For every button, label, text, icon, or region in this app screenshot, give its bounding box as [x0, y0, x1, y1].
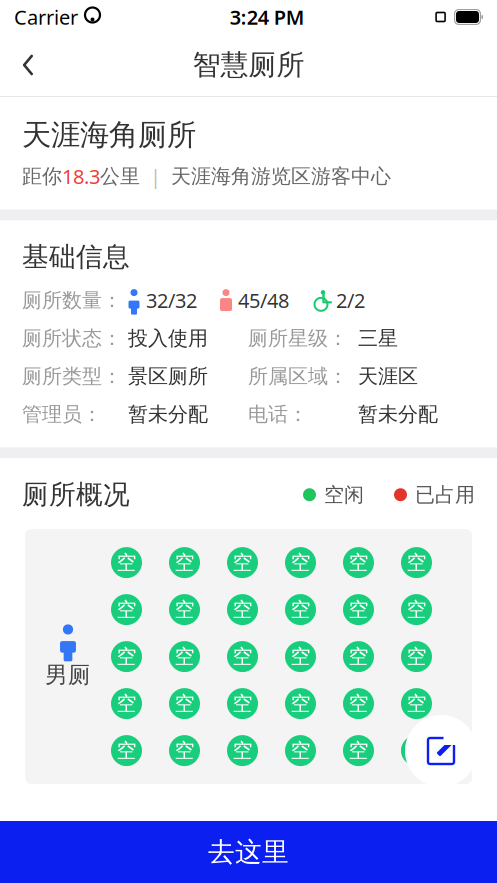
- staticText: |: [140, 163, 171, 190]
- staticText: 天涯海角游览区游客中心: [171, 164, 391, 189]
- staticText: 空: [348, 644, 368, 669]
- staticText: 空闲: [324, 482, 364, 507]
- staticText: 空: [406, 738, 426, 763]
- staticText: 空: [116, 597, 136, 622]
- staticText: 已占用: [415, 482, 475, 507]
- staticText: 空: [232, 597, 252, 622]
- button[interactable]: Back: [6, 43, 50, 87]
- staticText: 18.3: [62, 163, 100, 190]
- staticText: 空: [290, 644, 310, 669]
- staticText: 空: [116, 644, 136, 669]
- staticText: 暂未分配: [358, 402, 438, 427]
- staticText: 空: [290, 597, 310, 622]
- staticText: 空: [232, 550, 252, 575]
- staticText: 空: [116, 738, 136, 763]
- staticText: 空: [290, 550, 310, 575]
- staticText: 厕所类型：: [22, 364, 122, 389]
- staticText: 景区厕所: [128, 364, 208, 389]
- staticText: 投入使用: [128, 326, 208, 351]
- button[interactable]: Edit: [405, 715, 477, 787]
- staticText: 三星: [358, 326, 398, 351]
- staticText: 空: [232, 691, 252, 716]
- staticText: 空: [232, 644, 252, 669]
- staticText: 空: [406, 550, 426, 575]
- staticText: 空: [406, 691, 426, 716]
- staticText: Carrier: [14, 4, 78, 30]
- staticText: 管理员：: [22, 402, 102, 427]
- staticText: 空: [116, 691, 136, 716]
- staticText: 厕所状态：: [22, 326, 122, 351]
- staticText: 空: [348, 550, 368, 575]
- staticText: 男厕: [45, 661, 91, 689]
- staticText: 空: [174, 644, 194, 669]
- staticText: 空: [174, 691, 194, 716]
- staticText: 所属区域：: [248, 364, 348, 389]
- button[interactable]: 去这里: [0, 821, 497, 883]
- staticText: 空: [348, 691, 368, 716]
- staticText: 空: [348, 597, 368, 622]
- staticText: 智慧厕所: [192, 48, 304, 82]
- staticText: 空: [290, 691, 310, 716]
- staticText: 厕所数量：: [22, 288, 122, 313]
- staticText: 空: [290, 738, 310, 763]
- staticText: 去这里: [208, 836, 289, 868]
- staticText: 空: [174, 550, 194, 575]
- staticText: 距你: [22, 164, 62, 189]
- staticText: 空: [174, 738, 194, 763]
- staticText: 基础信息: [22, 241, 130, 273]
- staticText: 电话：: [248, 402, 308, 427]
- staticText: 公里: [100, 164, 140, 189]
- staticText: 3:24 PM: [230, 4, 305, 30]
- staticText: 暂未分配: [128, 402, 208, 427]
- staticText: 45/48: [238, 287, 289, 314]
- staticText: 空: [232, 738, 252, 763]
- staticText: 厕所概况: [22, 478, 130, 511]
- staticText: 空: [348, 738, 368, 763]
- staticText: 空: [116, 550, 136, 575]
- staticText: 天涯海角厕所: [22, 117, 196, 153]
- staticText: 2/2: [336, 287, 365, 314]
- staticText: 空: [406, 597, 426, 622]
- staticText: 32/32: [146, 287, 197, 314]
- staticText: 空: [406, 644, 426, 669]
- staticText: 厕所星级：: [248, 326, 348, 351]
- staticText: 天涯区: [358, 364, 418, 389]
- staticText: 空: [174, 597, 194, 622]
